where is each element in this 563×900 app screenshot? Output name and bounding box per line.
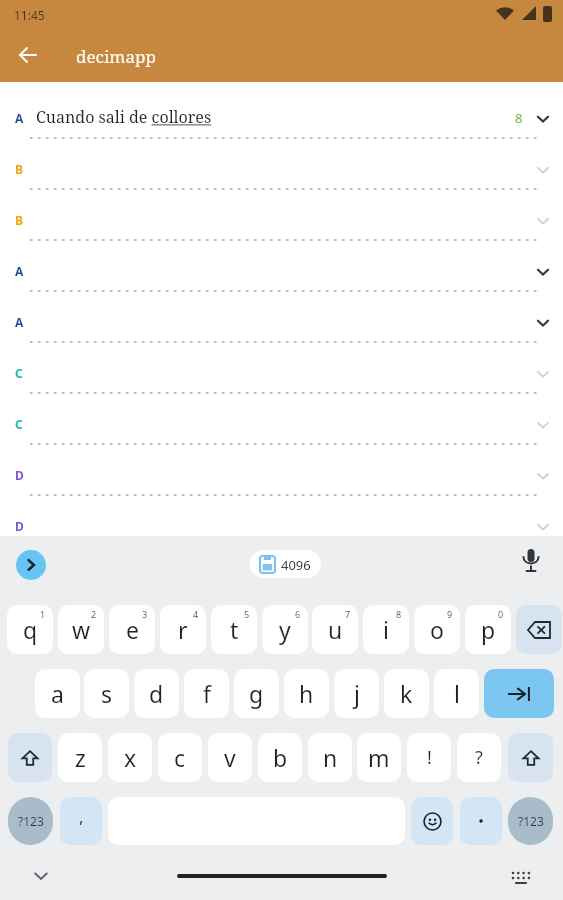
staticText: 0 [498, 608, 504, 620]
staticText: p [481, 614, 496, 645]
button[interactable]: a [35, 669, 80, 718]
button[interactable]: e [109, 605, 155, 654]
button[interactable] [8, 733, 52, 782]
staticText: decimapp [76, 45, 156, 68]
staticText: C [15, 365, 23, 381]
button[interactable]: ! [407, 733, 451, 782]
button[interactable]: s [84, 669, 129, 718]
staticText: q [23, 614, 38, 645]
staticText: D [15, 467, 24, 483]
staticText: y [279, 614, 291, 645]
button[interactable]: u [312, 605, 358, 654]
button[interactable]: r [160, 605, 206, 654]
staticText: c [174, 742, 186, 773]
staticText: u [328, 614, 343, 645]
button[interactable]: C [0, 343, 563, 394]
staticText: 1 [40, 608, 46, 620]
button[interactable]: f [184, 669, 229, 718]
button[interactable] [484, 669, 554, 718]
button[interactable]: y [262, 605, 308, 654]
staticText: 3 [142, 608, 148, 620]
staticText: 11:45 [14, 7, 45, 23]
button[interactable]: k [384, 669, 429, 718]
staticText: 4096 [281, 556, 311, 574]
staticText: 6 [295, 608, 301, 620]
staticText: ?123 [18, 813, 44, 829]
button[interactable]: o [414, 605, 460, 654]
button[interactable] [411, 797, 453, 845]
staticText: v [224, 742, 236, 773]
button[interactable]: A [0, 292, 563, 343]
button[interactable]: j [334, 669, 379, 718]
staticText: g [249, 678, 264, 709]
staticText: 4 [193, 608, 199, 620]
button[interactable] [16, 550, 46, 580]
staticText: x [124, 742, 137, 773]
button[interactable]: n [308, 733, 352, 782]
staticText: t [230, 614, 239, 645]
staticText: A [15, 263, 24, 279]
staticText: 8 [396, 608, 402, 620]
staticText: 9 [447, 608, 453, 620]
staticText: 2 [91, 608, 97, 620]
staticText: 8 [515, 109, 523, 127]
button[interactable]: q [7, 605, 53, 654]
staticText: Cuando sali de collores [36, 106, 212, 128]
staticText: n [323, 742, 338, 773]
button[interactable] [508, 733, 553, 782]
button[interactable] [516, 605, 562, 654]
button[interactable] [33, 868, 49, 884]
button[interactable]: , [60, 797, 102, 845]
button[interactable]: w [58, 605, 104, 654]
staticText: , [79, 805, 84, 828]
staticText: C [15, 416, 23, 432]
staticText: r [178, 614, 188, 645]
button[interactable]: b [258, 733, 302, 782]
button[interactable]: g [234, 669, 279, 718]
button[interactable]: x [108, 733, 152, 782]
button[interactable]: ?123 [8, 797, 53, 845]
staticText: A [15, 314, 24, 330]
staticText: 5 [244, 608, 250, 620]
button[interactable]: ?123 [508, 797, 553, 845]
staticText: w [72, 614, 91, 645]
button[interactable] [460, 797, 502, 845]
button[interactable]: B [0, 139, 563, 190]
button[interactable]: c [158, 733, 202, 782]
staticText: o [430, 614, 444, 645]
staticText: j [354, 678, 360, 709]
staticText: B [15, 161, 23, 177]
staticText: f [203, 678, 211, 709]
button[interactable]: ? [457, 733, 501, 782]
button[interactable]: 4096 [250, 550, 321, 578]
button[interactable] [12, 39, 44, 71]
staticText: 7 [345, 608, 351, 620]
button[interactable]: D [0, 496, 563, 536]
staticText: a [51, 678, 64, 709]
button[interactable]: A [0, 88, 563, 139]
button[interactable]: h [284, 669, 329, 718]
button[interactable]: A [0, 241, 563, 292]
staticText: ! [427, 745, 432, 770]
staticText: l [454, 678, 460, 709]
staticText: e [126, 614, 139, 645]
staticText: h [299, 678, 314, 709]
button[interactable]: v [208, 733, 252, 782]
button[interactable]: l [434, 669, 479, 718]
button[interactable]: p [465, 605, 511, 654]
button[interactable]: C [0, 394, 563, 445]
button[interactable]: d [134, 669, 179, 718]
button[interactable]: z [58, 733, 102, 782]
button[interactable]: t [211, 605, 257, 654]
button[interactable] [523, 549, 539, 574]
button[interactable]: B [0, 190, 563, 241]
button[interactable] [510, 870, 532, 885]
button[interactable]: m [357, 733, 401, 782]
staticText: d [149, 678, 164, 709]
button[interactable]: i [363, 605, 409, 654]
staticText: b [273, 742, 288, 773]
button[interactable]: D [0, 445, 563, 496]
staticText: k [400, 678, 413, 709]
staticText: ?123 [518, 813, 544, 829]
